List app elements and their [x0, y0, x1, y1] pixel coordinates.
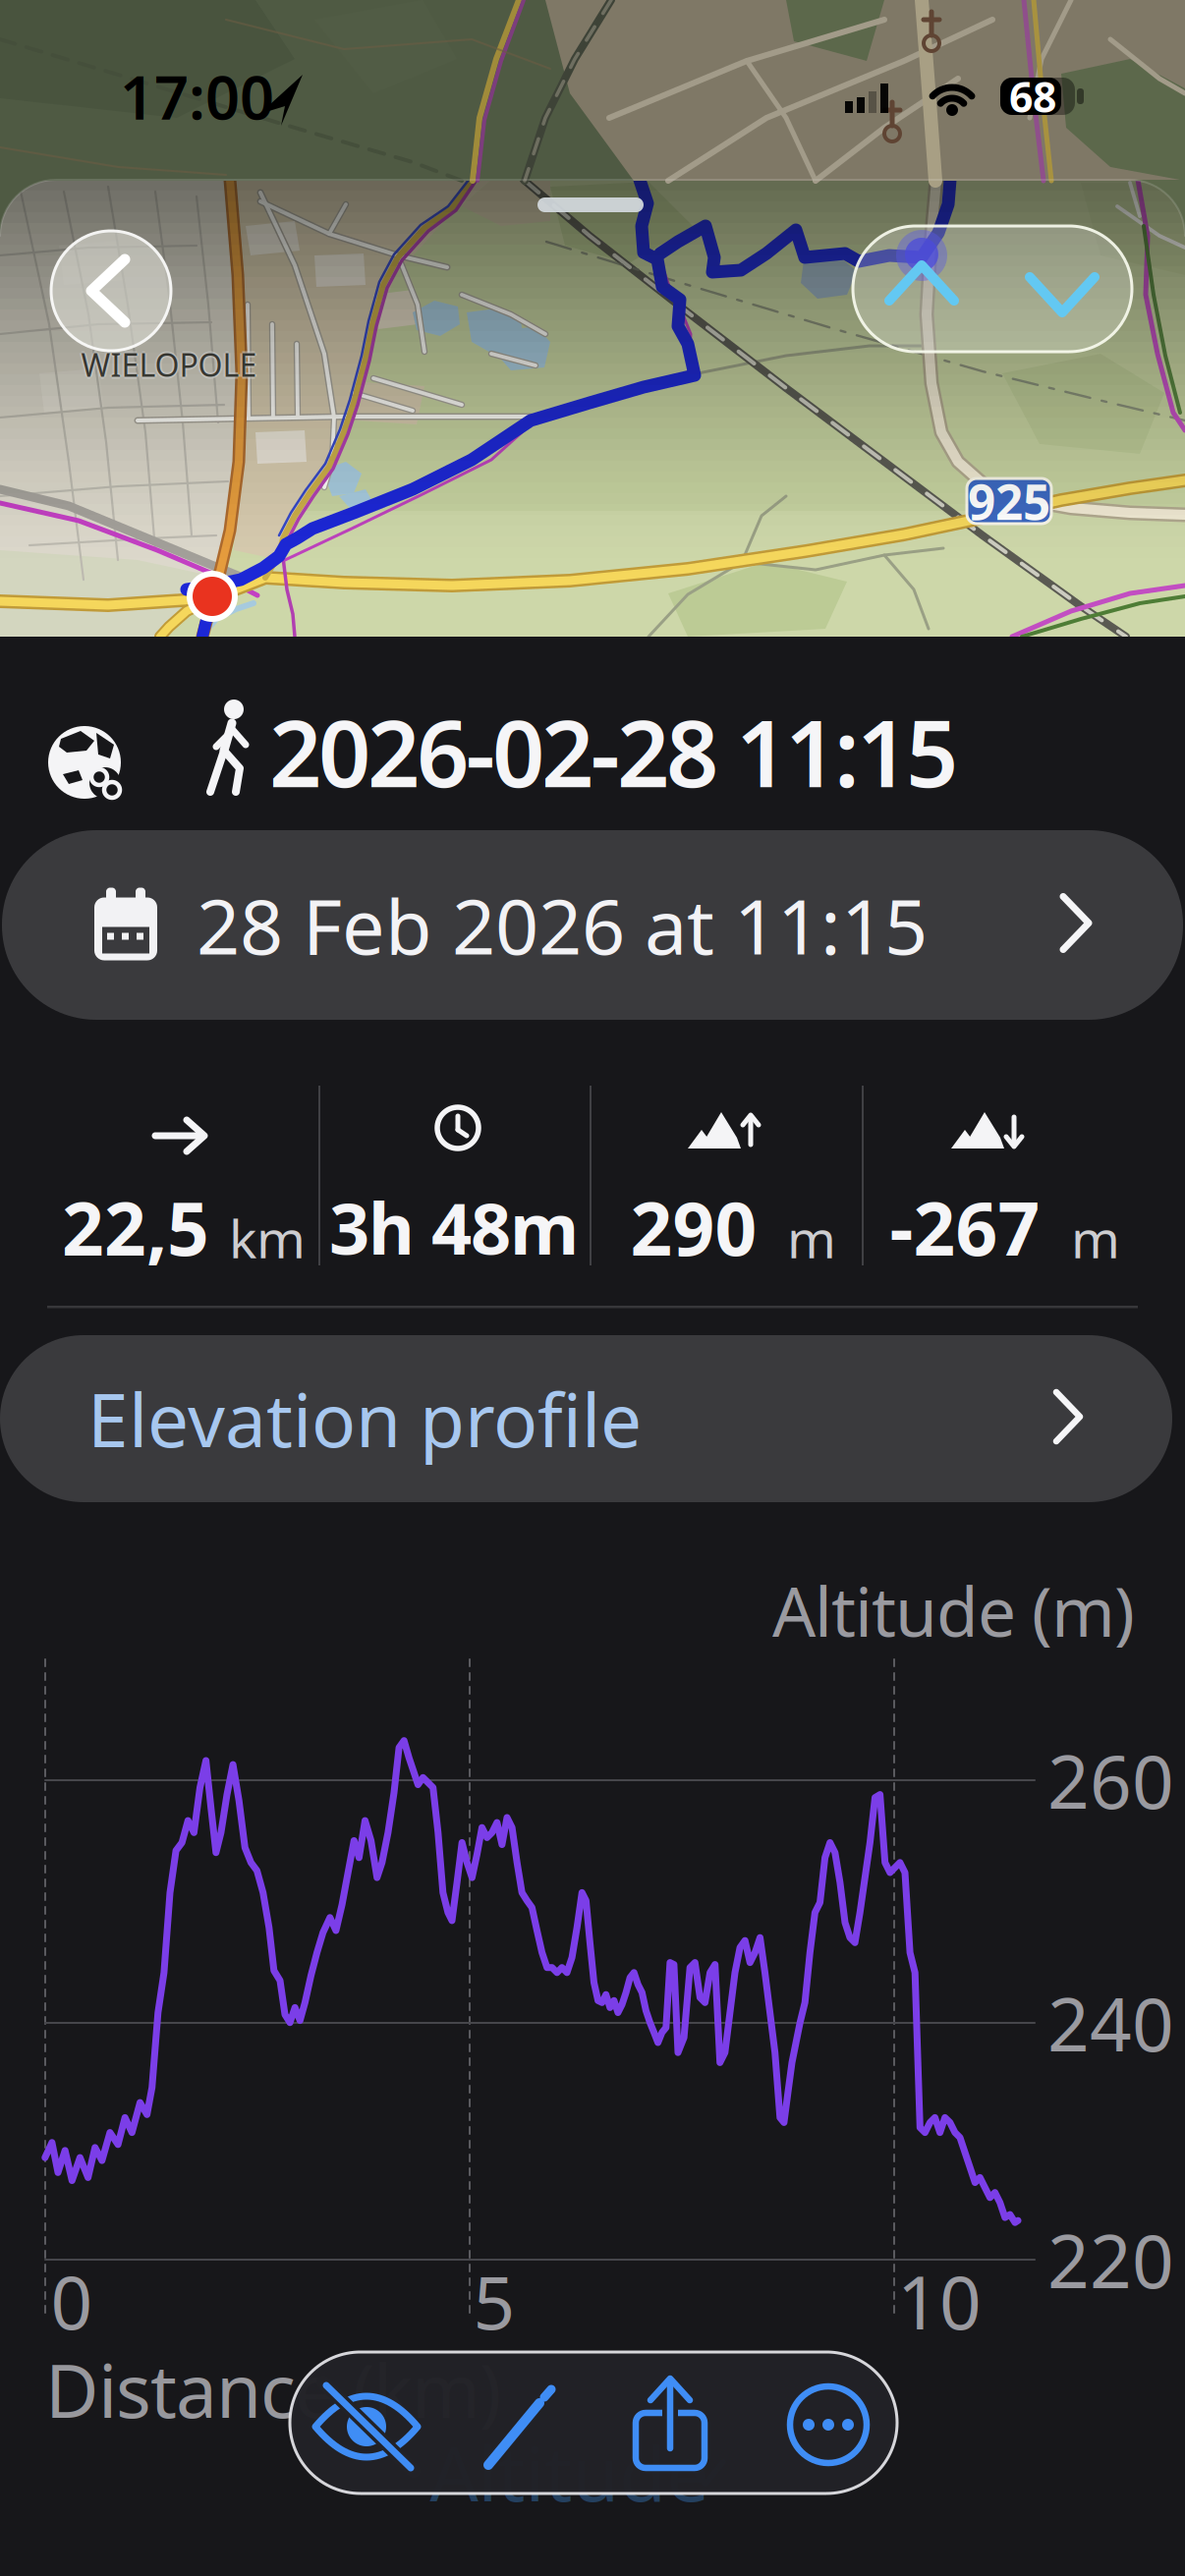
- staticText: m: [787, 1203, 836, 1273]
- staticText: Distance (km): [45, 2341, 501, 2438]
- staticText: 17:00: [120, 56, 274, 136]
- staticText: m: [1071, 1203, 1120, 1273]
- staticText: WIELOPOLE: [79, 344, 255, 385]
- staticText: WIELOPOLE: [83, 344, 259, 385]
- button[interactable]: Edit: [0, 0, 1185, 2576]
- button[interactable]: 28 Feb 2026 at 11:15: [2, 830, 1183, 1020]
- staticText: -267: [890, 1178, 1040, 1276]
- staticText: 240: [1047, 1974, 1174, 2072]
- staticText: Altitude (m): [772, 1565, 1135, 1656]
- button[interactable]: Elevation profile: [0, 1335, 1172, 1502]
- staticText: 925: [968, 469, 1050, 533]
- staticText: 3h 48m: [329, 1180, 579, 1274]
- button[interactable]: Previous track point: [870, 226, 974, 352]
- staticText: 260: [1047, 1731, 1174, 1829]
- staticText: 220: [1047, 2211, 1174, 2308]
- button[interactable]: Share: [0, 0, 1185, 2576]
- staticText: 22,5: [62, 1178, 209, 1276]
- button[interactable]: More: [0, 0, 1185, 2576]
- staticText: 68: [1009, 68, 1056, 124]
- staticText: km: [229, 1203, 306, 1273]
- staticText: Elevation profile: [87, 1370, 642, 1467]
- staticText: 5: [473, 2252, 515, 2350]
- button[interactable]: Next track point: [1010, 226, 1114, 352]
- staticText: 290: [630, 1178, 757, 1276]
- staticText: 28 Feb 2026 at 11:15: [197, 875, 928, 975]
- button[interactable]: Hide: [0, 0, 1185, 2576]
- staticText: WIELOPOLE: [81, 344, 257, 385]
- staticText: Altitude: [430, 2421, 710, 2522]
- staticText: WIELOPOLE: [81, 342, 257, 383]
- button[interactable]: Back: [50, 230, 172, 352]
- staticText: 10: [897, 2252, 982, 2350]
- staticText: 0: [51, 2252, 93, 2350]
- staticText: 2026-02-28 11:15: [269, 691, 958, 812]
- staticText: WIELOPOLE: [81, 346, 257, 387]
